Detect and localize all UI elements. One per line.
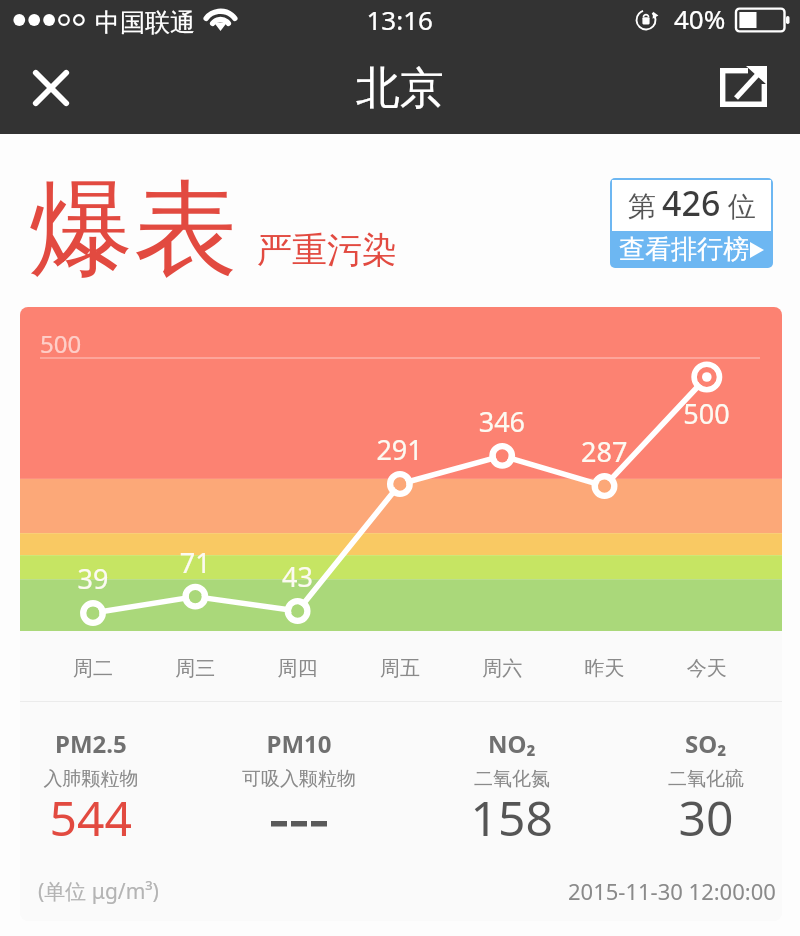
button[interactable]: Share bbox=[710, 58, 776, 124]
staticText: 查看排行榜 bbox=[619, 233, 749, 266]
staticText: 426 bbox=[662, 180, 721, 224]
staticText: 位 bbox=[728, 189, 756, 224]
staticText: 第 bbox=[628, 189, 656, 224]
button[interactable]: Close bbox=[18, 55, 84, 121]
button[interactable]: 第 bbox=[610, 178, 773, 268]
